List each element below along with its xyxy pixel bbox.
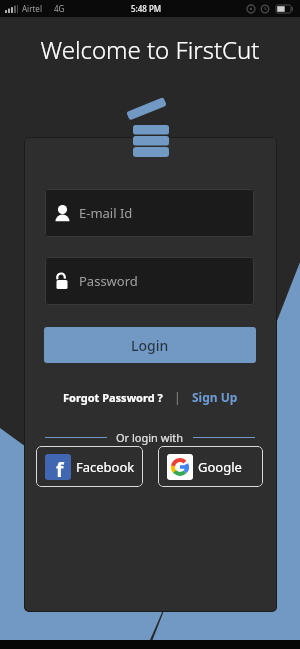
staticText: Password [79,272,138,290]
staticText: Welcome to FirstCut [0,33,300,66]
staticText: 4G [54,3,65,14]
button[interactable]: Login [44,327,256,363]
staticText: Login [131,336,169,355]
button[interactable]: Sign Up [192,389,238,405]
staticText: Google [198,458,242,476]
staticText: 5:48 PM [131,3,162,14]
button[interactable]: Google [158,446,263,487]
staticText: E-mail Id [79,204,133,222]
staticText: | [174,389,181,405]
staticText: Facebook [76,458,135,476]
staticText: f [56,457,64,480]
staticText: Airtel [22,3,42,14]
button[interactable]: f [36,446,143,487]
button[interactable]: Password [45,257,254,305]
button[interactable]: Forgot Password ? [63,390,163,405]
staticText: Or login with [116,430,184,445]
button[interactable]: E-mail Id [45,189,254,237]
